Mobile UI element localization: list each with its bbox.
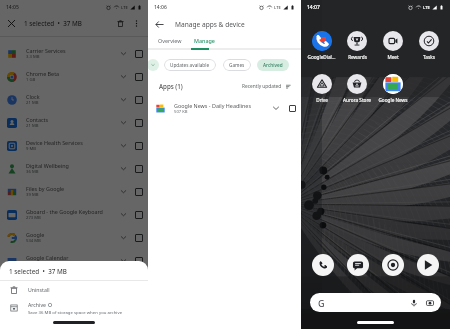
staticText: GoogleDial...: [307, 54, 336, 60]
button[interactable]: Aurora Store: [339, 74, 375, 103]
staticText: 14:07: [307, 4, 320, 11]
button[interactable]: Delete: [114, 17, 127, 30]
button[interactable]: Rewards: [339, 31, 375, 60]
staticText: 14:05: [6, 4, 19, 11]
staticText: Recently updated: [242, 83, 282, 90]
staticText: LTE: [274, 5, 281, 11]
staticText: 39 MB: [26, 192, 39, 198]
button[interactable]: G: [310, 293, 441, 312]
staticText: Save 36 MB of storage space when you arc…: [28, 309, 123, 315]
staticText: Google Calendar: [26, 254, 69, 261]
button[interactable]: Updates available: [164, 59, 216, 71]
staticText: Digital Wellbeing: [26, 162, 69, 169]
staticText: Clock: [26, 93, 40, 100]
button[interactable]: Uninstall: [0, 281, 148, 298]
button[interactable]: Phone: [312, 254, 334, 276]
staticText: Manage: [194, 37, 215, 44]
staticText: Archived: [263, 62, 283, 68]
staticText: Gboard - the Google Keyboard: [26, 208, 103, 215]
staticText: 1 selected • 37 MB: [24, 19, 82, 28]
staticText: 36 MB: [26, 169, 39, 175]
staticText: Meet: [387, 54, 399, 60]
button[interactable]: Carrier Services: [0, 42, 148, 65]
staticText: 507 KB: [174, 109, 188, 115]
button[interactable]: Google: [0, 226, 148, 249]
button[interactable]: Contacts: [0, 111, 148, 134]
button[interactable]: Messages: [347, 254, 369, 276]
staticText: Archive: [28, 301, 46, 308]
staticText: Carrier Services: [26, 47, 66, 54]
button[interactable]: Close: [5, 17, 18, 30]
button[interactable]: Games: [223, 59, 251, 71]
staticText: Manage apps & device: [175, 20, 245, 29]
button[interactable]: Clock: [0, 88, 148, 111]
button[interactable]: Meet: [375, 31, 411, 60]
button[interactable]: Archived: [257, 59, 289, 71]
button[interactable]: Play Store: [417, 254, 439, 276]
staticText: Google News - Daily Headlines: [174, 102, 251, 109]
button[interactable]: Back: [152, 17, 167, 32]
button[interactable]: Files by Google: [0, 180, 148, 203]
staticText: Games: [229, 62, 245, 68]
staticText: 14:06: [154, 4, 167, 11]
button[interactable]: Camera: [382, 254, 404, 276]
staticText: 1 GB: [26, 77, 36, 83]
staticText: Drive: [316, 97, 328, 103]
staticText: Uninstall: [28, 286, 50, 293]
button[interactable]: Overview: [154, 33, 186, 48]
staticText: LTE: [121, 5, 128, 11]
staticText: 21 MB: [26, 100, 39, 106]
staticText: LTE: [423, 5, 430, 11]
button[interactable]: Manage: [190, 33, 219, 48]
button[interactable]: Google News - Daily Headlines: [148, 97, 301, 119]
staticText: Contacts: [26, 116, 49, 123]
staticText: Files by Google: [26, 185, 65, 192]
staticText: Device Health Services: [26, 139, 83, 146]
button[interactable]: More options: [130, 17, 143, 30]
button[interactable]: Google News: [375, 74, 411, 103]
staticText: 3.3 MB: [26, 54, 40, 60]
button[interactable]: Google Calendar: [0, 249, 148, 272]
button[interactable]: Digital Wellbeing: [0, 157, 148, 180]
button[interactable]: Gboard - the Google Keyboard: [0, 203, 148, 226]
staticText: Tasks: [423, 54, 435, 60]
button[interactable]: Archive: [0, 298, 148, 318]
staticText: 9 MB: [26, 146, 37, 152]
staticText: Apps (1): [159, 82, 183, 90]
staticText: 534 MB: [26, 238, 41, 244]
button[interactable]: Device Health Services: [0, 134, 148, 157]
staticText: 273 MB: [26, 215, 41, 221]
button[interactable]: Filter: [148, 59, 159, 71]
staticText: Aurora Store: [343, 97, 371, 103]
button[interactable]: Drive: [304, 74, 339, 103]
staticText: Updates available: [170, 62, 210, 68]
staticText: Overview: [158, 37, 182, 44]
staticText: Rewards: [348, 54, 367, 60]
button[interactable]: Recently updated: [242, 83, 292, 90]
staticText: 21 MB: [26, 123, 39, 129]
staticText: Google News: [378, 97, 408, 103]
button[interactable]: Tasks: [411, 31, 447, 60]
staticText: G: [318, 297, 325, 309]
staticText: 1 selected • 37 MB: [9, 267, 67, 276]
staticText: Google: [26, 231, 45, 238]
button[interactable]: GoogleDial...: [304, 31, 339, 60]
button[interactable]: Chrome Beta: [0, 65, 148, 88]
staticText: Chrome Beta: [26, 70, 60, 77]
